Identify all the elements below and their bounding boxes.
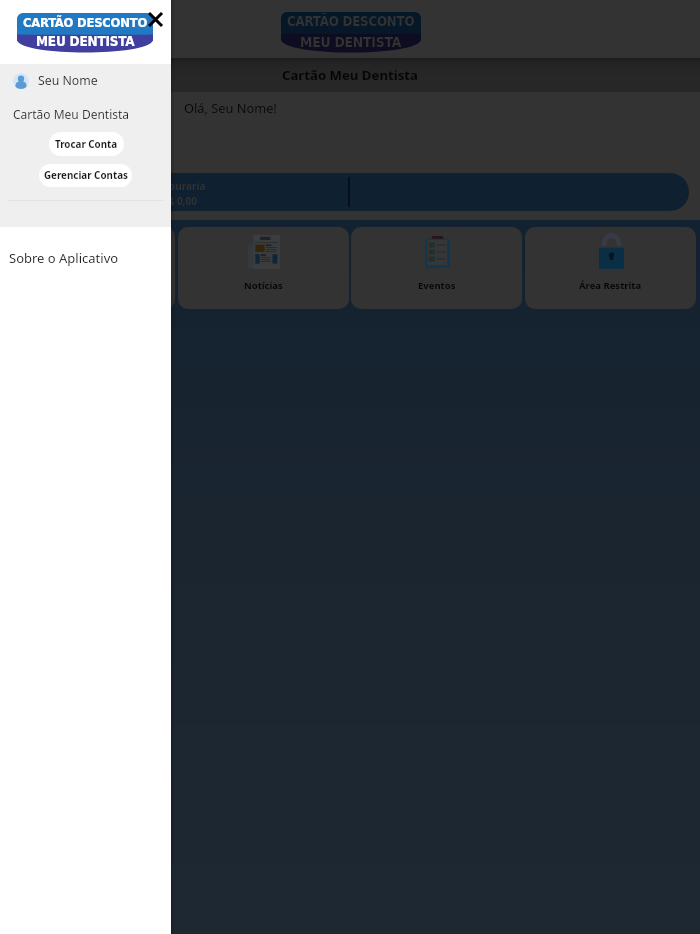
- button[interactable]: Tesouraria: [11, 173, 689, 211]
- button[interactable]: Eventos: [351, 227, 522, 309]
- staticText: Notícias: [244, 279, 283, 292]
- button[interactable]: Notícias: [178, 227, 349, 309]
- staticText: Trocar Conta: [55, 138, 118, 151]
- staticText: Área Restrita: [579, 279, 642, 292]
- staticText: Sobre o Aplicativo: [9, 249, 119, 267]
- button[interactable]: Assinaturas: [4, 227, 175, 309]
- staticText: Tesouraria: [153, 179, 206, 193]
- staticText: MEU DENTISTA: [300, 34, 402, 50]
- staticText: Gerenciar Contas: [44, 169, 128, 182]
- staticText: CARTÃO DESCONTO: [287, 14, 415, 29]
- staticText: Cartão Meu Dentista: [282, 66, 418, 84]
- button[interactable]: Fechar menu: [146, 10, 164, 28]
- staticText: MEU DENTISTA: [36, 34, 135, 50]
- staticText: Seu Nome: [38, 72, 98, 89]
- staticText: CARTÃO DESCONTO: [23, 15, 148, 30]
- button[interactable]: Sobre o Aplicativo: [0, 236, 171, 280]
- staticText: Cartão Meu Dentista: [13, 106, 130, 122]
- staticText: Olá, Seu Nome!: [184, 99, 277, 116]
- button[interactable]: Área Restrita: [525, 227, 696, 309]
- button[interactable]: Gerenciar Contas: [39, 164, 132, 187]
- staticText: Eventos: [418, 279, 456, 292]
- staticText: R$ 0,00: [162, 194, 197, 208]
- button[interactable]: Trocar Conta: [49, 132, 124, 156]
